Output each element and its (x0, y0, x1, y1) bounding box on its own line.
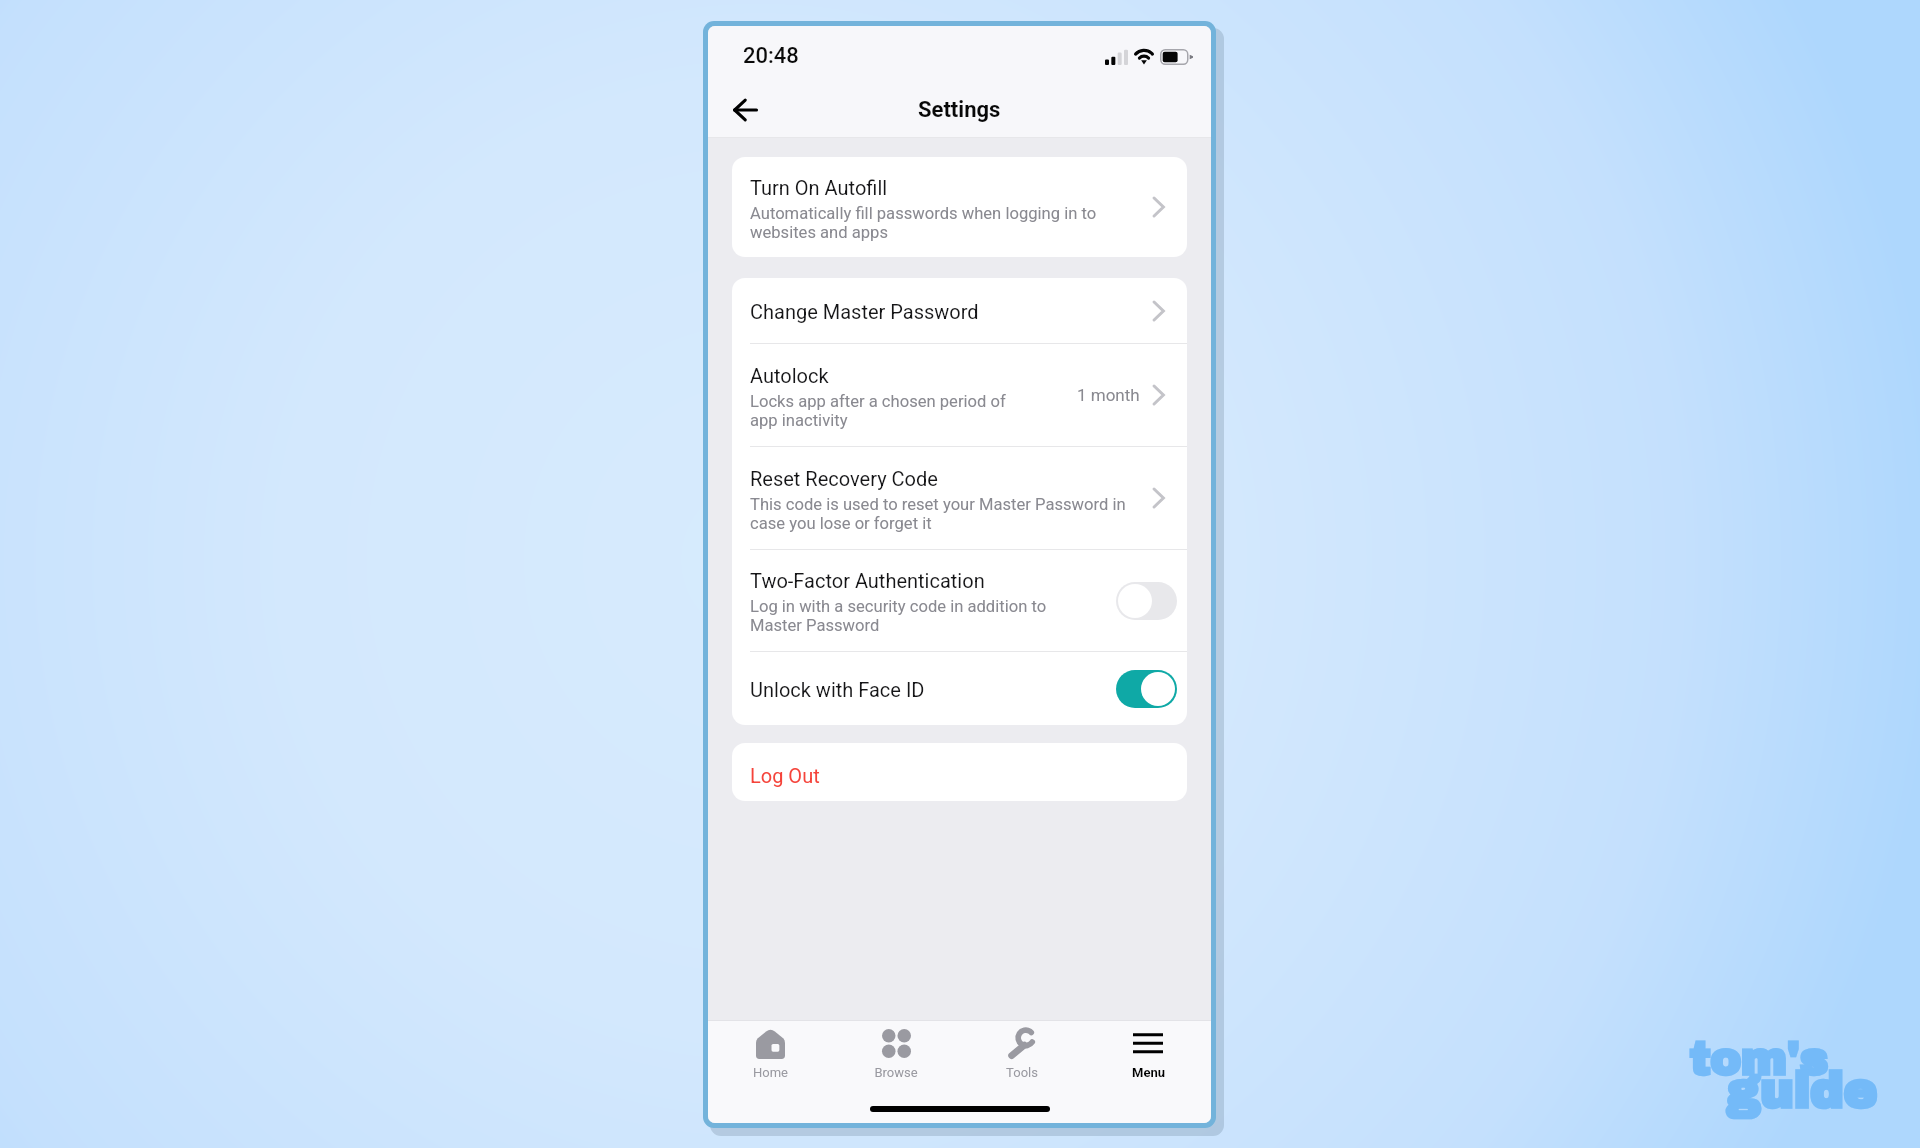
staticText: 1 month (1077, 385, 1140, 405)
staticText: Automatically fill passwords when loggin… (750, 204, 1146, 242)
staticText: Change Master Password (750, 301, 979, 324)
button[interactable]: Tools (959, 1021, 1085, 1085)
button[interactable]: Back (723, 88, 767, 132)
button[interactable]: Turn on (1116, 582, 1177, 620)
staticText: Tools (1006, 1065, 1038, 1080)
button[interactable]: Browse (833, 1021, 959, 1085)
staticText: tom's (1689, 1035, 1827, 1085)
button[interactable]: Autolock (732, 344, 1187, 446)
staticText: guide (1726, 1064, 1877, 1118)
staticText: Log Out (750, 764, 820, 787)
staticText: 20:48 (743, 43, 799, 69)
staticText: Menu (1132, 1065, 1165, 1080)
staticText: Reset Recovery Code (750, 468, 938, 491)
staticText: Browse (874, 1065, 918, 1080)
button[interactable]: Change Master Password (732, 278, 1187, 343)
button[interactable]: Home (708, 1021, 833, 1085)
button[interactable]: Turn On Autofill (732, 157, 1187, 257)
staticText: Home (753, 1065, 788, 1080)
button[interactable]: Log Out (732, 743, 1187, 801)
button[interactable]: Turn off (1116, 670, 1177, 708)
staticText: Turn On Autofill (750, 177, 888, 200)
button[interactable]: Reset Recovery Code (732, 447, 1187, 549)
staticText: Autolock (750, 365, 829, 388)
staticText: Unlock with Face ID (750, 679, 925, 702)
staticText: Log in with a security code in addition … (750, 597, 1080, 635)
button[interactable]: Two-Factor Authentication (732, 550, 1187, 651)
staticText: This code is used to reset your Master P… (750, 495, 1146, 533)
staticText: Settings (918, 97, 1001, 123)
button[interactable]: Menu (1085, 1021, 1211, 1085)
button[interactable]: Unlock with Face ID (732, 652, 1187, 725)
staticText: Locks app after a chosen period of app i… (750, 392, 1027, 430)
staticText: Two-Factor Authentication (750, 570, 985, 593)
